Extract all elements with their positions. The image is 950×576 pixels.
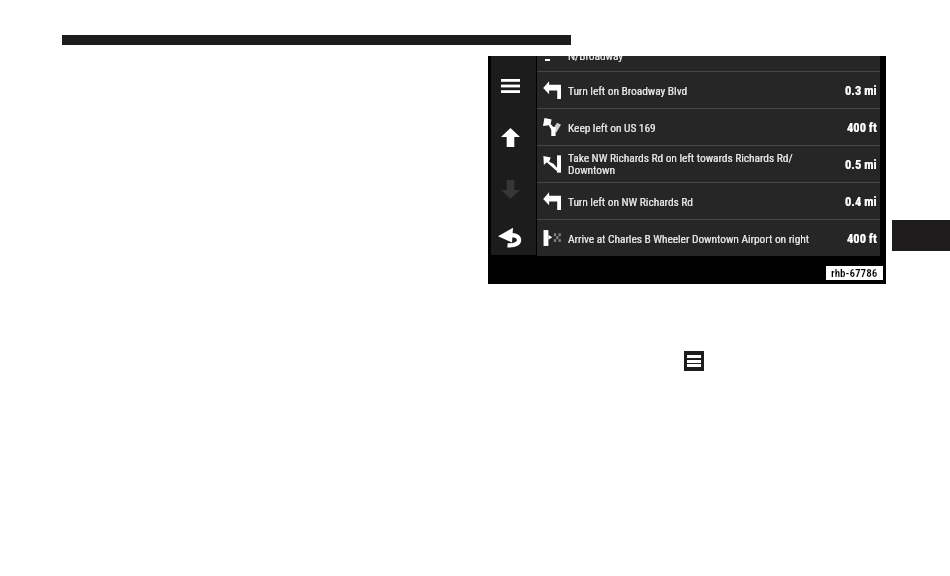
button[interactable]: Turn left on Broadway Blvd xyxy=(537,72,880,108)
staticText: 400 ft xyxy=(847,120,877,135)
staticText: 0.4 mi xyxy=(845,194,877,209)
staticText: Turn left on NW Richards Rd xyxy=(568,195,845,208)
button[interactable]: Keep left on US 169 xyxy=(537,109,880,145)
button[interactable]: Menu xyxy=(495,71,533,101)
staticText: Take NW Richards Rd on left towards Rich… xyxy=(568,151,845,177)
button[interactable]: Scroll down xyxy=(495,174,533,204)
staticText: Keep left on US 169 xyxy=(568,121,847,134)
staticText: rhb-67786 xyxy=(831,267,878,280)
button[interactable]: Back xyxy=(495,222,533,252)
button[interactable]: Menu xyxy=(684,351,704,371)
staticText: 400 ft xyxy=(847,231,877,246)
button[interactable]: Arrive at Charles B Wheeler Downtown Air… xyxy=(537,220,880,256)
button[interactable]: Scroll up xyxy=(495,122,533,152)
staticText: Turn left on Broadway Blvd xyxy=(568,84,845,97)
button[interactable]: Turn left on NW Richards Rd xyxy=(537,183,880,219)
staticText: N/Broadway xyxy=(568,56,624,62)
button[interactable]: N/Broadway xyxy=(537,56,880,71)
button[interactable]: Take NW Richards Rd on left towards Rich… xyxy=(537,146,880,182)
staticText: 0.5 mi xyxy=(845,157,877,172)
staticText: 0.3 mi xyxy=(845,83,877,98)
staticText: Arrive at Charles B Wheeler Downtown Air… xyxy=(568,232,847,245)
